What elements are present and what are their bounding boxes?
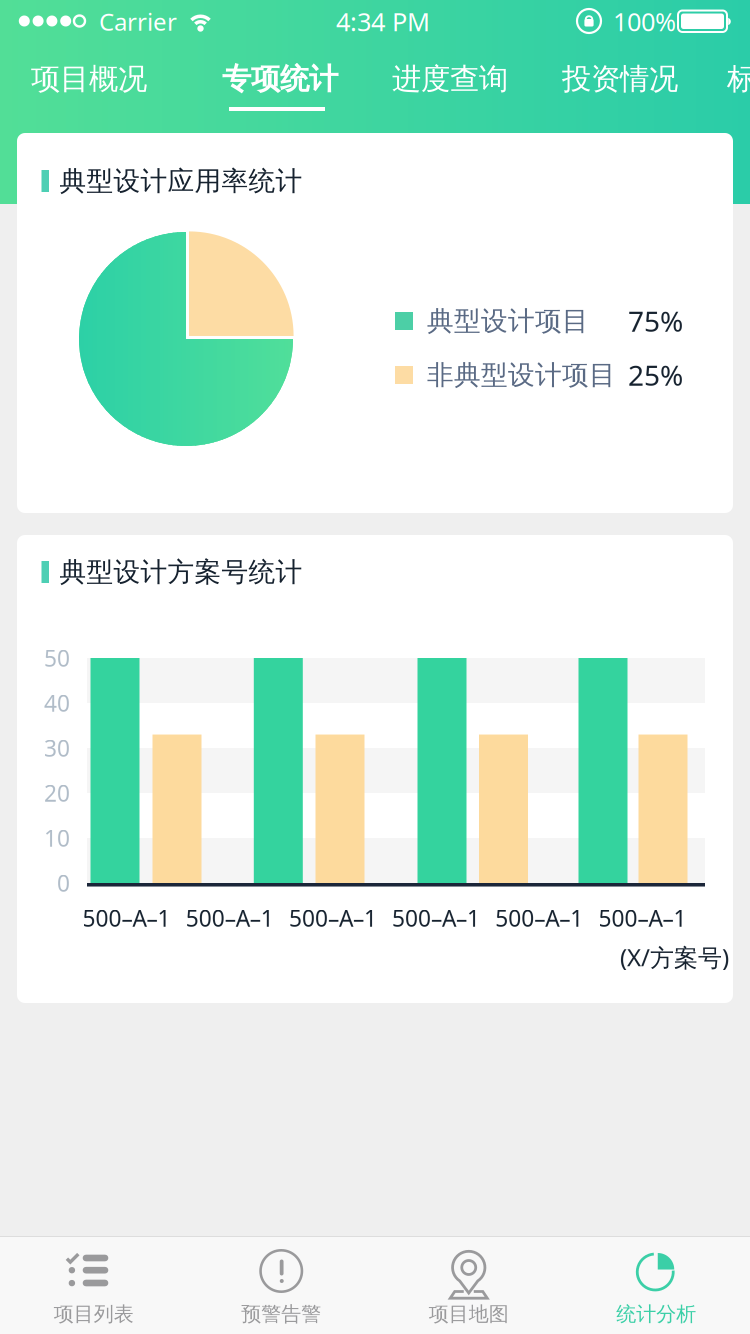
staticText: 专项统计: [222, 61, 338, 97]
staticText: 4:34 PM: [336, 5, 430, 38]
staticText: 进度查询: [392, 61, 508, 97]
staticText: 500–A–1: [392, 903, 480, 933]
staticText: 项目地图: [429, 1302, 509, 1326]
staticText: 典型设计应用率统计: [59, 165, 302, 197]
staticText: 投资情况: [562, 61, 678, 97]
button[interactable]: 标: [709, 53, 750, 123]
button[interactable]: 项目列表: [0, 1237, 187, 1334]
staticText: (X/方案号): [620, 941, 729, 973]
staticText: 100%: [613, 5, 676, 38]
staticText: 25%: [628, 356, 683, 394]
staticText: 500–A–1: [495, 903, 583, 933]
staticText: 500–A–1: [186, 903, 274, 933]
staticText: 75%: [628, 302, 683, 340]
staticText: 50: [44, 643, 70, 673]
staticText: 标: [727, 61, 750, 97]
staticText: 预警告警: [241, 1302, 321, 1326]
staticText: 500–A–1: [82, 903, 170, 933]
staticText: 30: [44, 733, 70, 763]
staticText: 项目概况: [31, 61, 147, 97]
staticText: 项目列表: [54, 1302, 134, 1326]
button[interactable]: 统计分析: [562, 1237, 750, 1334]
staticText: 40: [44, 688, 70, 718]
button[interactable]: 项目概况: [13, 53, 165, 123]
staticText: 统计分析: [616, 1302, 696, 1326]
button[interactable]: 项目地图: [375, 1237, 562, 1334]
staticText: 典型设计方案号统计: [59, 556, 302, 588]
staticText: 20: [44, 778, 70, 808]
staticText: 500–A–1: [598, 903, 686, 933]
staticText: 典型设计项目: [427, 305, 589, 337]
button[interactable]: 专项统计: [204, 53, 352, 123]
staticText: Carrier: [99, 6, 177, 37]
button[interactable]: 投资情况: [544, 53, 694, 123]
staticText: 10: [44, 823, 70, 853]
staticText: 0: [57, 868, 70, 898]
button[interactable]: 进度查询: [374, 53, 524, 123]
staticText: 500–A–1: [289, 903, 377, 933]
staticText: 非典型设计项目: [427, 359, 616, 391]
button[interactable]: 预警告警: [187, 1237, 375, 1334]
